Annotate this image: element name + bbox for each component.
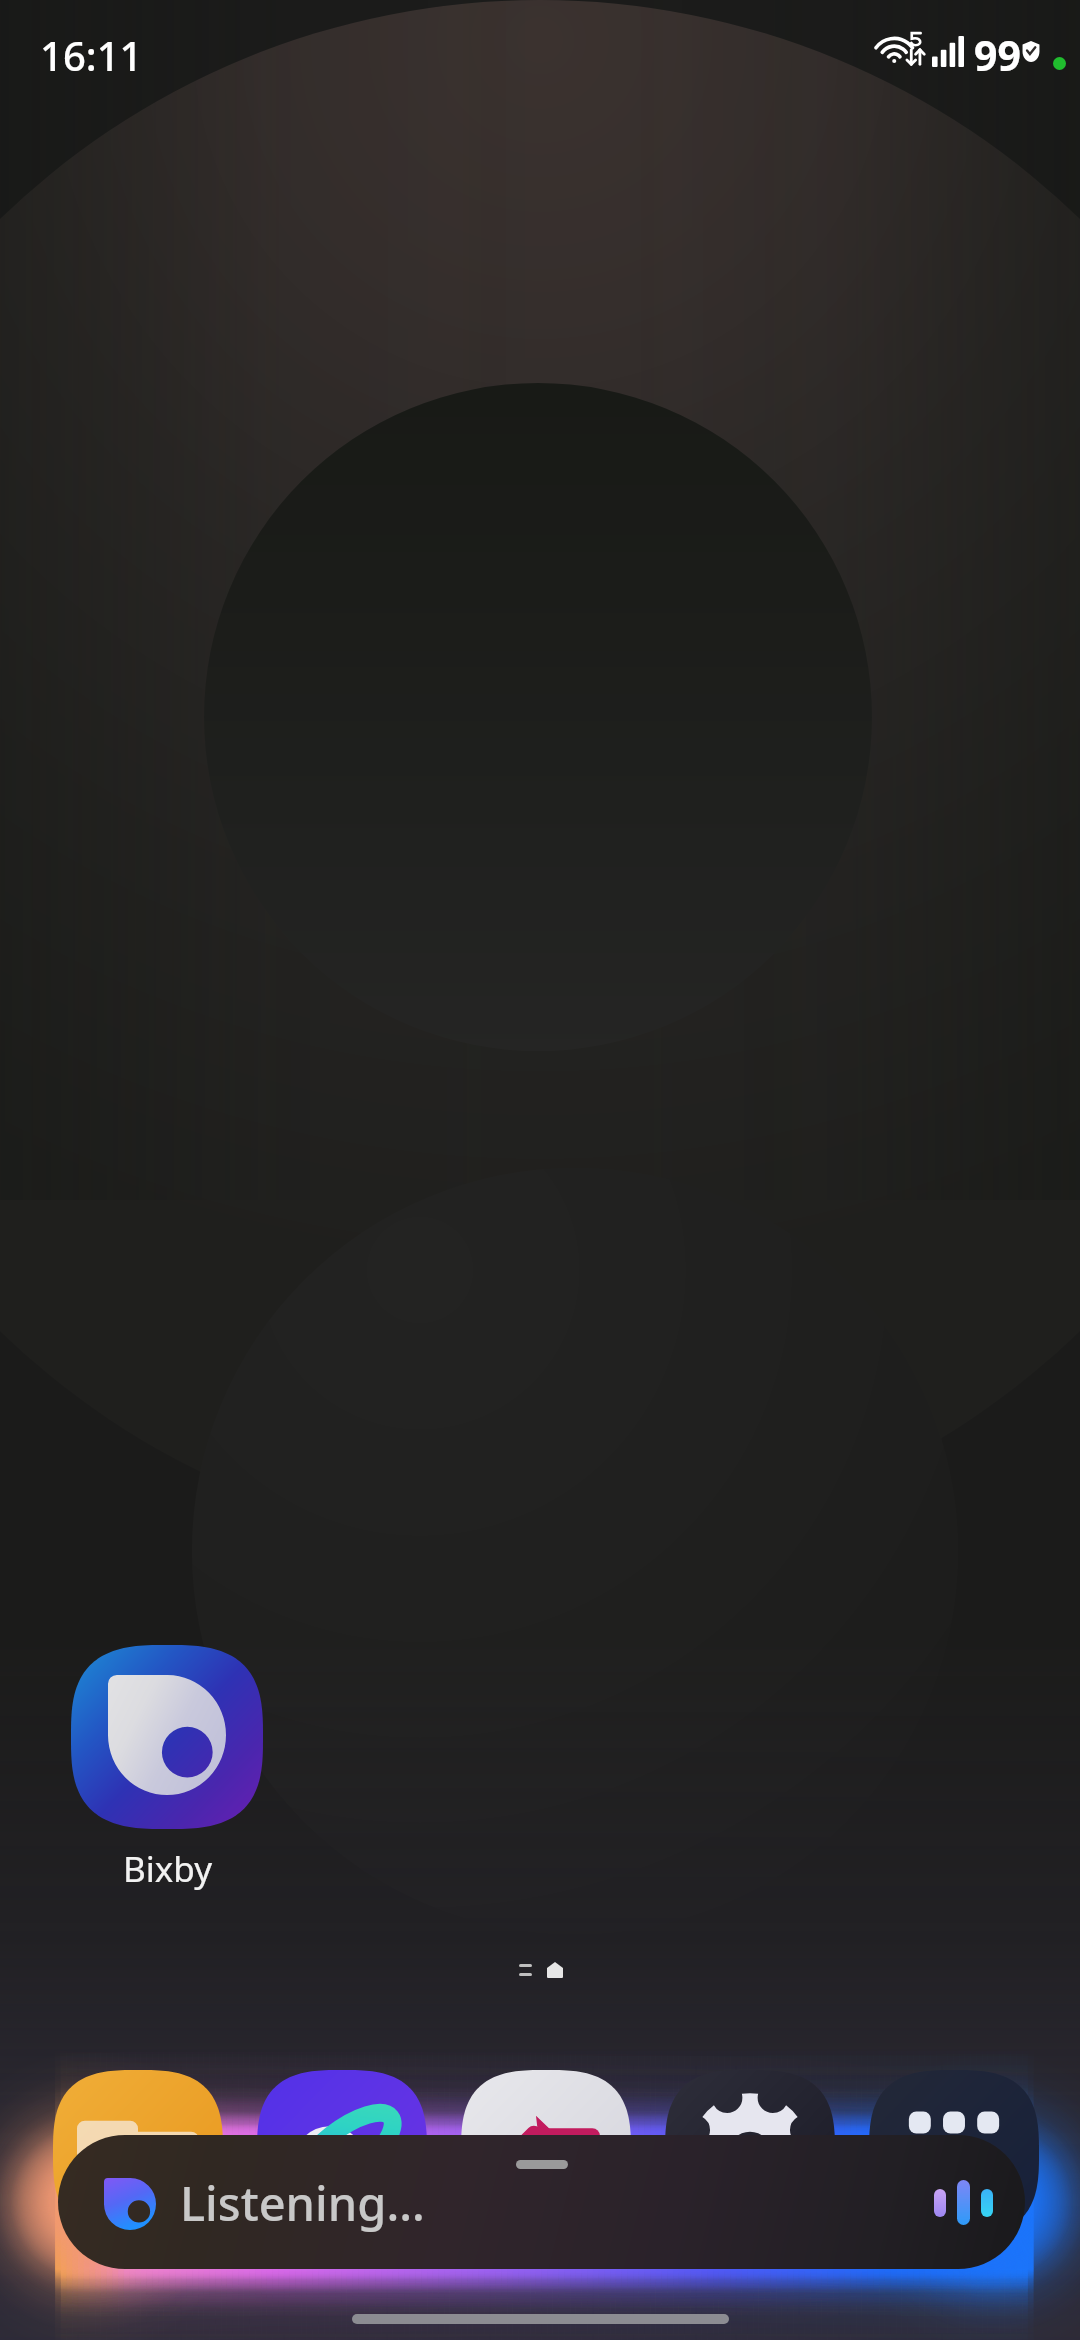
button[interactable]: Galaxy Store [461, 2070, 631, 2236]
button[interactable]: Home page [547, 1962, 563, 1978]
button[interactable]: Internet [257, 2070, 427, 2236]
button[interactable]: Settings [665, 2070, 835, 2236]
button[interactable]: Home gesture bar [352, 2314, 729, 2324]
button[interactable]: My Files [53, 2070, 223, 2236]
button[interactable]: Bixby [71, 1645, 263, 1893]
button[interactable]: Apps page [519, 1964, 532, 1976]
staticText: 16:11 [40, 28, 143, 82]
staticText: Bixby [123, 1845, 212, 1893]
staticText: Listening... [180, 2171, 425, 2235]
button[interactable]: Listening... [58, 2135, 1025, 2269]
button[interactable]: More apps [869, 2070, 1039, 2236]
staticText: 99 [974, 27, 1021, 83]
